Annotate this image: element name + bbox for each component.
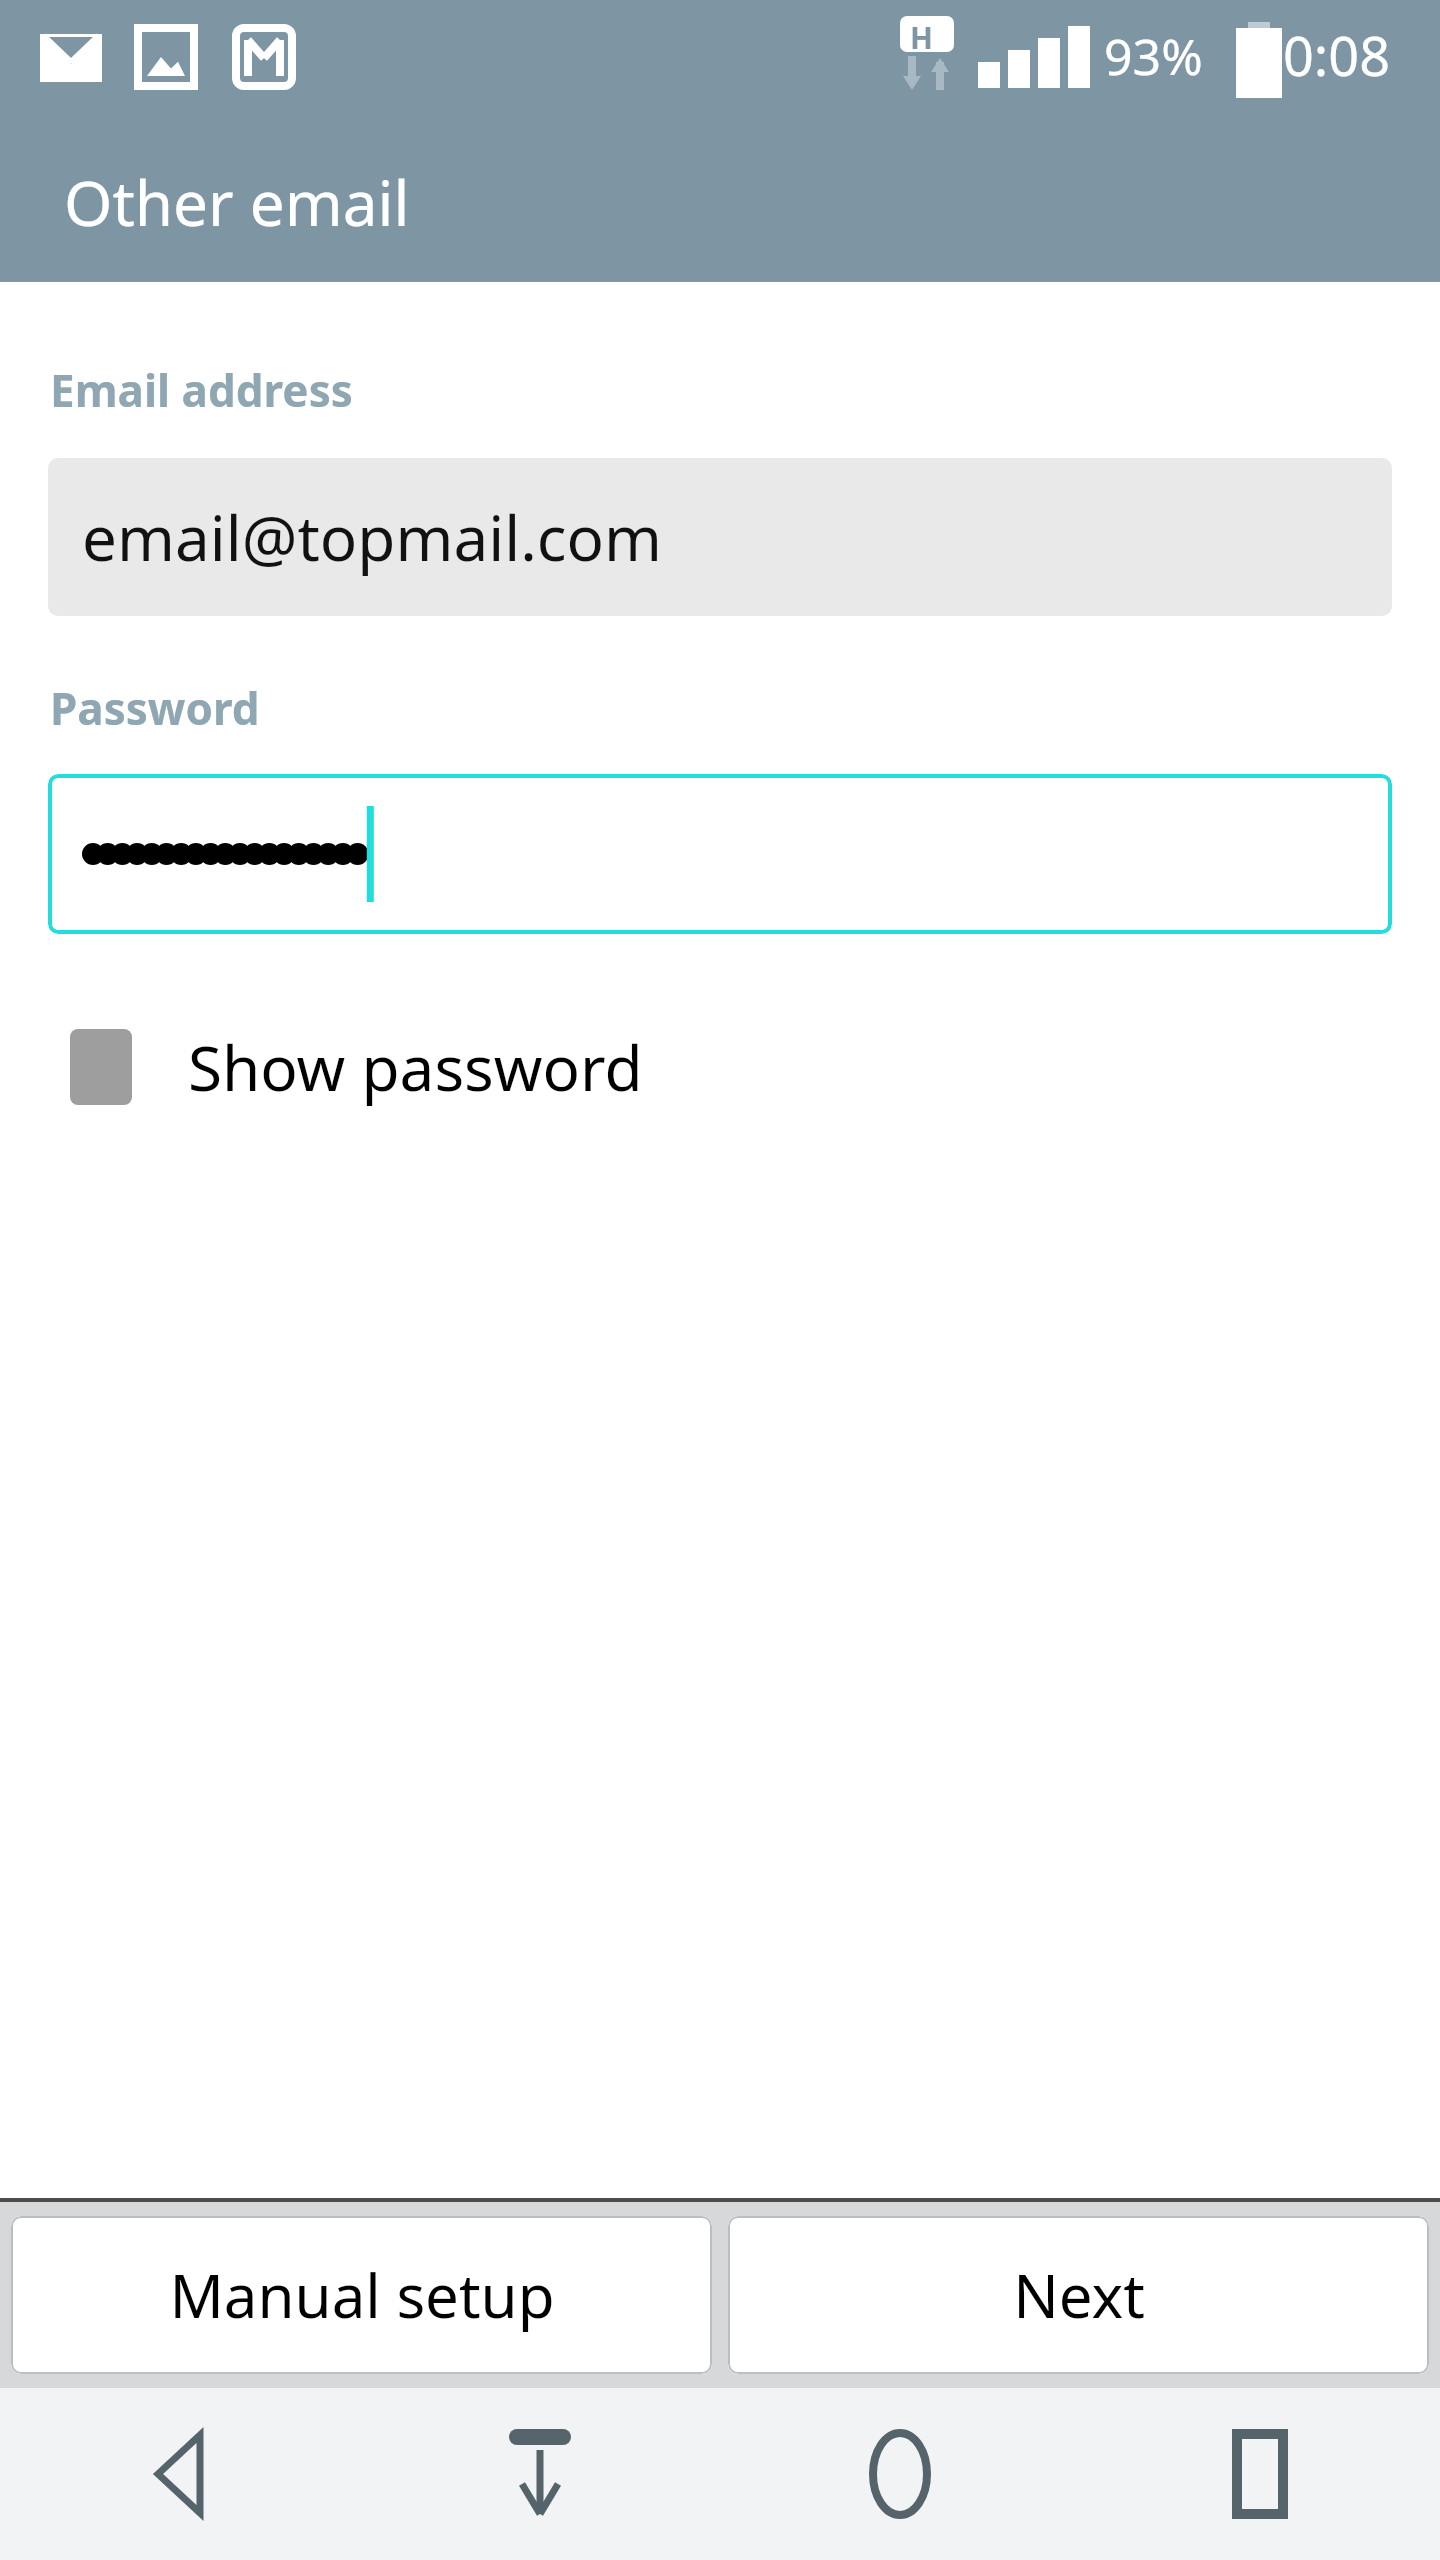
staticText: Show password	[188, 1025, 643, 1109]
button[interactable]: Home	[720, 2388, 1080, 2560]
staticText: H	[910, 17, 933, 58]
staticText: 20:08	[1252, 18, 1391, 92]
staticText: 93%	[1104, 22, 1203, 90]
button[interactable]: Hide keyboard	[360, 2388, 720, 2560]
staticText: Password	[50, 678, 260, 738]
staticText: Email address	[50, 360, 353, 420]
button[interactable]: Show password	[48, 1002, 643, 1132]
button[interactable]: Back	[0, 2388, 360, 2560]
staticText: Manual setup	[169, 2254, 555, 2336]
staticText: email@topmail.com	[82, 495, 663, 579]
staticText: Other email	[64, 160, 410, 244]
staticText: Next	[1013, 2254, 1145, 2336]
button[interactable]: Manual setup	[11, 2216, 712, 2374]
button[interactable]: Next	[728, 2216, 1429, 2374]
button[interactable]: email@topmail.com	[48, 458, 1392, 616]
button[interactable]: Recent apps	[1080, 2388, 1440, 2560]
button[interactable]	[48, 774, 1392, 934]
